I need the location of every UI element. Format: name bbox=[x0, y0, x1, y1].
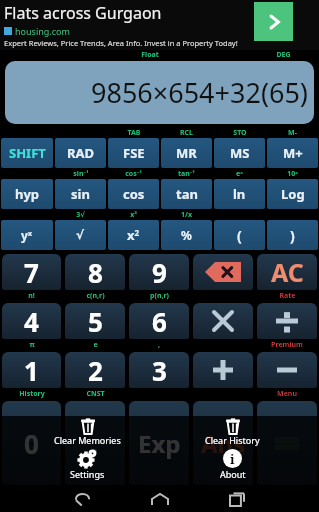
button[interactable]: ( bbox=[214, 220, 265, 250]
staticText: yx bbox=[21, 227, 33, 243]
button[interactable]: MS bbox=[214, 138, 265, 168]
button[interactable]: Multiply bbox=[193, 303, 253, 339]
button[interactable]: 1 bbox=[2, 352, 61, 388]
staticText: MS bbox=[230, 144, 250, 162]
staticText: Clear History bbox=[205, 434, 260, 446]
staticText: Clear Memories bbox=[54, 434, 121, 446]
staticText: Settings bbox=[70, 468, 105, 480]
staticText: M+ bbox=[283, 144, 303, 162]
staticText: History bbox=[19, 389, 45, 399]
button[interactable]: tan bbox=[161, 179, 212, 209]
staticText: 1/x bbox=[181, 210, 192, 219]
button[interactable]: Equals bbox=[257, 401, 317, 485]
staticText: Premium bbox=[271, 340, 303, 350]
staticText: About bbox=[220, 468, 246, 480]
button[interactable]: RAD bbox=[55, 138, 106, 168]
button[interactable]: Divide bbox=[257, 303, 317, 339]
staticText: M- bbox=[288, 128, 297, 137]
staticText: RCL bbox=[180, 128, 193, 137]
staticText: Menu bbox=[277, 389, 297, 399]
button[interactable]: 9856×654+32(65) bbox=[5, 61, 314, 124]
button[interactable]: MR bbox=[161, 138, 212, 168]
button[interactable]: AC bbox=[257, 254, 317, 290]
staticText: STO bbox=[233, 128, 247, 137]
staticText: sin bbox=[71, 185, 90, 203]
button[interactable]: Ans bbox=[193, 401, 253, 485]
staticText: Flats across Gurgaon bbox=[4, 2, 162, 24]
button[interactable]: Plus bbox=[193, 352, 253, 388]
staticText: CNST bbox=[86, 389, 105, 399]
staticText: MR bbox=[176, 144, 197, 162]
button[interactable]: Minus bbox=[257, 352, 317, 388]
staticText: i bbox=[230, 450, 235, 468]
staticText: π bbox=[29, 340, 35, 350]
staticText: , bbox=[158, 340, 160, 350]
button[interactable]: M+ bbox=[267, 138, 318, 168]
button[interactable]: Clear Memories bbox=[49, 416, 126, 486]
staticText: SHIFT bbox=[9, 144, 46, 162]
button[interactable]: ) bbox=[267, 220, 318, 250]
staticText: 5 bbox=[88, 304, 103, 339]
staticText: TAB bbox=[127, 128, 141, 137]
button[interactable]: √ bbox=[55, 220, 106, 250]
button[interactable]: hyp bbox=[1, 179, 53, 209]
staticText: Rate bbox=[279, 291, 296, 301]
staticText: % bbox=[181, 227, 192, 243]
staticText: 1 bbox=[24, 353, 39, 388]
staticText: 3 bbox=[152, 353, 167, 388]
button[interactable]: cos bbox=[108, 179, 159, 209]
staticText: Exp bbox=[138, 427, 181, 460]
staticText: cos bbox=[123, 185, 145, 203]
button[interactable]: FSE bbox=[108, 138, 159, 168]
button[interactable]: Home bbox=[148, 487, 172, 511]
button[interactable]: 8 bbox=[65, 254, 125, 290]
button[interactable]: Exp bbox=[129, 401, 189, 485]
button[interactable]: ln bbox=[214, 179, 265, 209]
button[interactable]: 3 bbox=[129, 352, 189, 388]
staticText: Float bbox=[141, 50, 159, 60]
staticText: 3√ bbox=[76, 210, 85, 219]
staticText: ( bbox=[237, 226, 242, 245]
button[interactable]: 2 bbox=[65, 352, 125, 388]
staticText: 9 bbox=[152, 255, 167, 290]
button[interactable]: % bbox=[161, 220, 212, 250]
staticText: eˣ bbox=[236, 169, 243, 178]
staticText: Ans bbox=[201, 427, 246, 460]
staticText: tan bbox=[176, 185, 198, 203]
staticText: Log bbox=[281, 185, 305, 203]
staticText: x³ bbox=[130, 210, 137, 219]
button[interactable]: x2 bbox=[108, 220, 159, 250]
button[interactable]: yx bbox=[1, 220, 53, 250]
staticText: 6 bbox=[152, 304, 167, 339]
staticText: DEG bbox=[276, 50, 291, 60]
staticText: c(n,r) bbox=[86, 291, 105, 301]
button[interactable]: Recents bbox=[225, 487, 249, 511]
button[interactable]: 5 bbox=[65, 303, 125, 339]
staticText: n! bbox=[28, 291, 35, 301]
button[interactable]: . bbox=[65, 401, 125, 485]
button[interactable]: Backspace bbox=[193, 254, 253, 290]
button[interactable]: SHIFT bbox=[1, 138, 53, 168]
button[interactable]: Log bbox=[267, 179, 318, 209]
staticText: 2 bbox=[88, 353, 103, 388]
button[interactable]: sin bbox=[55, 179, 106, 209]
staticText: 7 bbox=[24, 255, 39, 290]
button[interactable]: 6 bbox=[129, 303, 189, 339]
button[interactable]: 0 bbox=[2, 401, 61, 485]
button[interactable]: Back bbox=[70, 487, 94, 511]
staticText: RAD bbox=[67, 144, 95, 162]
button[interactable]: 9 bbox=[129, 254, 189, 290]
staticText: FSE bbox=[123, 144, 145, 162]
staticText: sin⁻¹ bbox=[73, 169, 89, 178]
staticText: x2 bbox=[127, 226, 140, 244]
staticText: hyp bbox=[15, 185, 40, 203]
button[interactable]: Clear History bbox=[194, 416, 271, 486]
button[interactable]: Open ad bbox=[254, 2, 293, 41]
staticText: e bbox=[93, 340, 98, 350]
button[interactable]: 4 bbox=[2, 303, 61, 339]
staticText: ) bbox=[290, 226, 295, 245]
staticText: housing.com bbox=[15, 25, 70, 37]
staticText: AC bbox=[271, 255, 304, 289]
button[interactable]: 7 bbox=[2, 254, 61, 290]
staticText: tan⁻¹ bbox=[178, 169, 195, 178]
